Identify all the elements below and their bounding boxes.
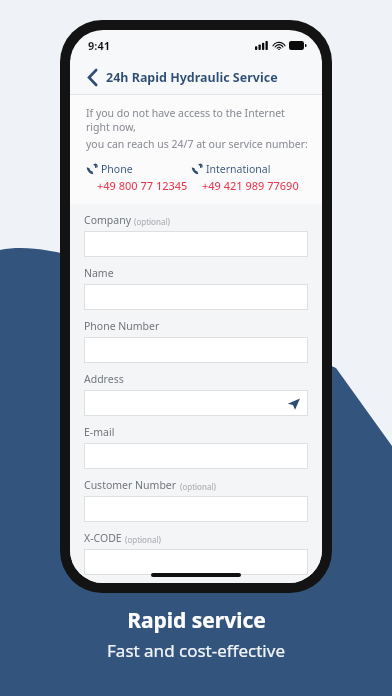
staticText: Phone Number <box>84 319 160 333</box>
staticText: X-CODE <box>84 531 122 545</box>
button[interactable] <box>84 549 308 575</box>
staticText: Rapid service <box>127 606 266 635</box>
staticText: E-mail <box>84 425 115 439</box>
staticText: Customer Number <box>84 478 177 492</box>
staticText: Name <box>84 266 114 280</box>
button[interactable]: International <box>191 162 322 193</box>
staticText: Address <box>84 372 124 386</box>
staticText: +49 800 77 12345 <box>97 178 188 193</box>
other: Use current location <box>287 397 300 410</box>
staticText: Company <box>84 213 131 227</box>
staticText: Phone <box>101 162 133 176</box>
staticText: (optional) <box>180 481 216 492</box>
button[interactable]: Use current location <box>84 390 308 416</box>
button[interactable]: Back <box>80 64 106 90</box>
button[interactable] <box>84 496 308 522</box>
button[interactable] <box>84 231 308 257</box>
staticText: Fast and cost-effective <box>107 639 285 662</box>
button[interactable]: Phone <box>86 162 191 193</box>
staticText: International <box>206 162 271 176</box>
button[interactable] <box>84 284 308 310</box>
button[interactable] <box>84 337 308 363</box>
staticText: If you do not have access to the Interne… <box>86 106 310 134</box>
staticText: 24h Rapid Hydraulic Service <box>106 69 278 86</box>
staticText: (optional) <box>134 216 170 227</box>
staticText: you can reach us 24/7 at our service num… <box>86 137 308 151</box>
staticText: +49 421 989 77690 <box>202 178 299 193</box>
button[interactable] <box>84 443 308 469</box>
staticText: 9:41 <box>88 38 110 53</box>
staticText: (optional) <box>125 534 161 545</box>
